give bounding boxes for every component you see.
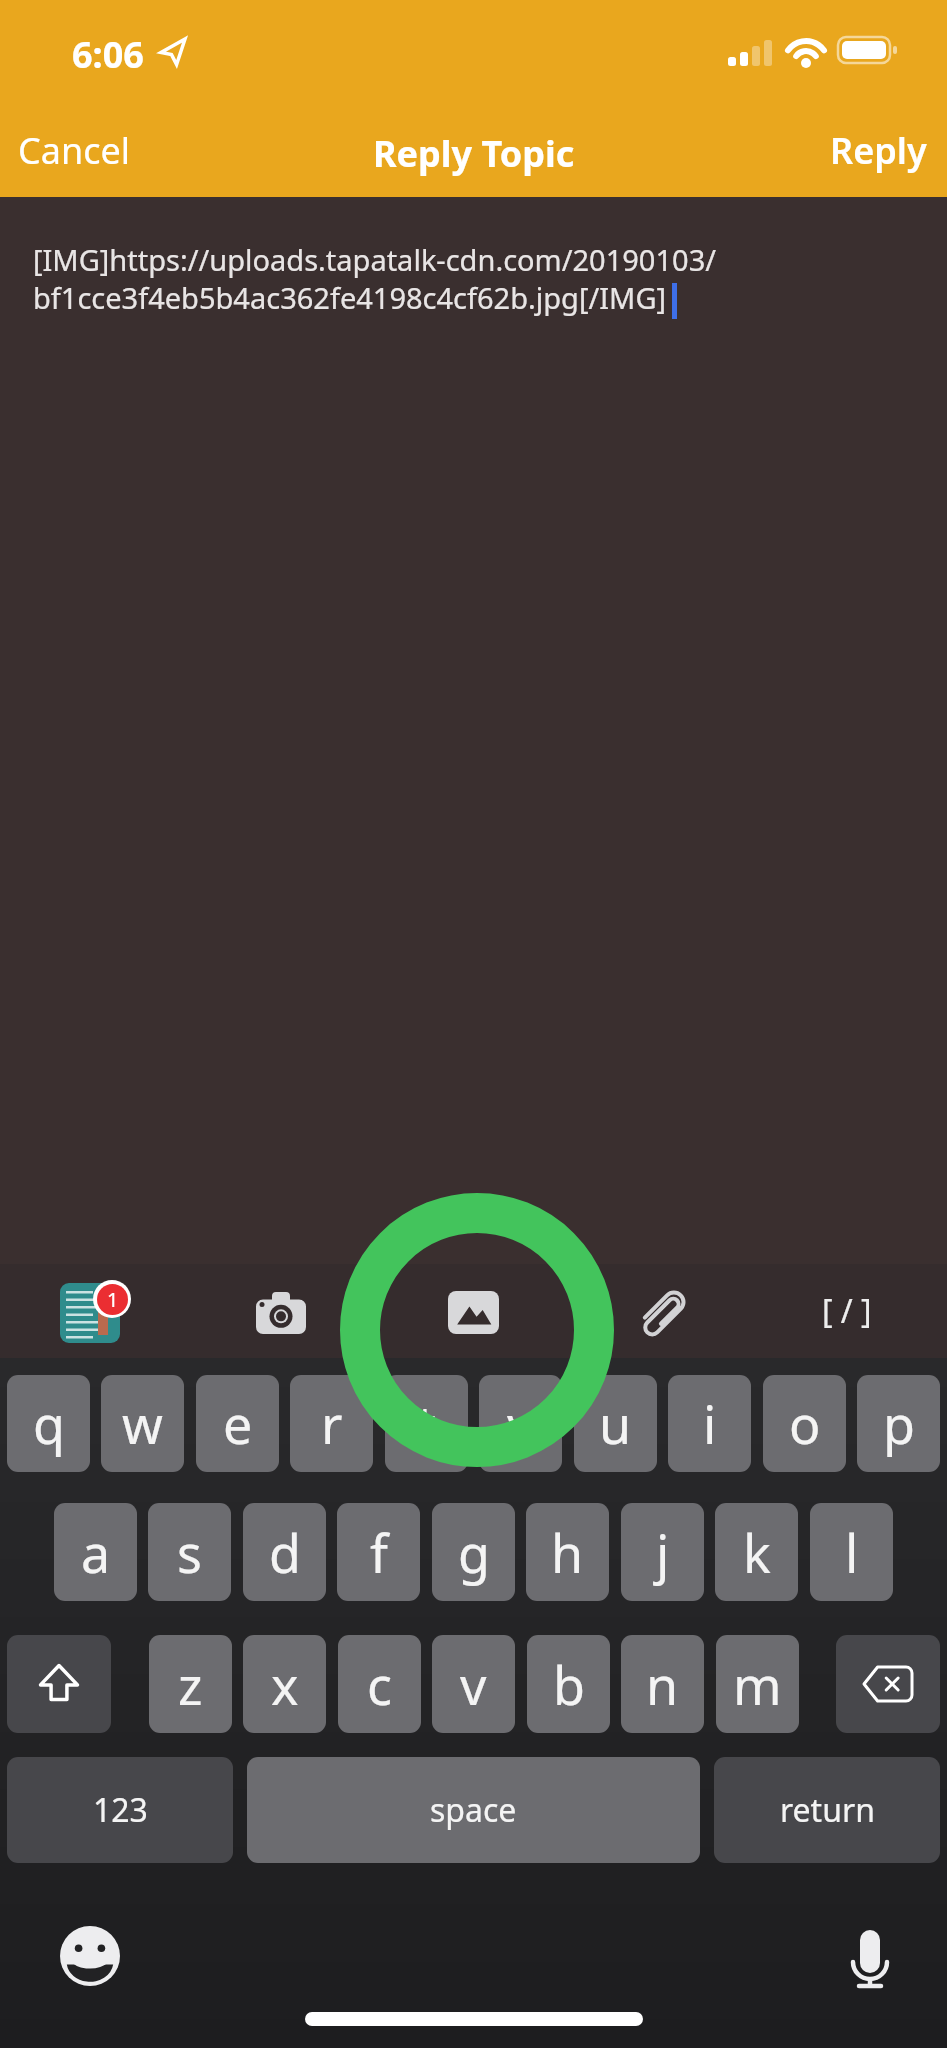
staticText: space — [430, 1788, 517, 1832]
button[interactable] — [7, 1635, 111, 1733]
button[interactable]: y — [479, 1375, 562, 1472]
button[interactable]: return — [714, 1757, 940, 1863]
button[interactable]: x — [243, 1635, 326, 1733]
staticText: [IMG]https://uploads.tapatalk-cdn.com/20… — [33, 240, 717, 317]
button[interactable]: o — [763, 1375, 846, 1472]
staticText: g — [458, 1517, 490, 1588]
button[interactable] — [642, 1289, 686, 1335]
staticText: u — [599, 1388, 632, 1459]
staticText: 123 — [93, 1788, 148, 1832]
button[interactable]: space — [247, 1757, 700, 1863]
button[interactable]: Cancel — [18, 126, 131, 175]
staticText: x — [271, 1649, 299, 1720]
button[interactable] — [60, 1283, 120, 1343]
button[interactable]: h — [526, 1503, 609, 1601]
staticText: i — [703, 1388, 717, 1459]
staticText: t — [417, 1388, 436, 1459]
button[interactable]: e — [196, 1375, 279, 1472]
button[interactable]: i — [668, 1375, 751, 1472]
staticText: o — [789, 1388, 821, 1459]
staticText: a — [81, 1517, 111, 1588]
button[interactable] — [851, 1928, 889, 1990]
staticText: z — [178, 1649, 203, 1720]
staticText: s — [177, 1517, 202, 1588]
button[interactable] — [448, 1291, 499, 1334]
button[interactable]: q — [7, 1375, 90, 1472]
button[interactable] — [836, 1635, 940, 1733]
button[interactable]: v — [432, 1635, 515, 1733]
staticText: r — [321, 1388, 343, 1459]
button[interactable]: t — [385, 1375, 468, 1472]
staticText: v — [460, 1649, 487, 1720]
button[interactable]: u — [574, 1375, 657, 1472]
button[interactable]: k — [715, 1503, 798, 1601]
staticText: l — [845, 1517, 859, 1588]
button[interactable]: b — [527, 1635, 610, 1733]
button[interactable] — [60, 1926, 120, 1986]
staticText: return — [780, 1788, 875, 1832]
button[interactable]: s — [148, 1503, 231, 1601]
staticText: c — [367, 1649, 392, 1720]
button[interactable]: w — [101, 1375, 184, 1472]
button[interactable]: f — [337, 1503, 420, 1601]
button[interactable]: 123 — [7, 1757, 233, 1863]
staticText: q — [33, 1388, 65, 1459]
staticText: j — [656, 1517, 670, 1588]
staticText: w — [122, 1388, 163, 1459]
staticText: n — [646, 1649, 679, 1720]
staticText: m — [733, 1649, 782, 1720]
button[interactable]: n — [621, 1635, 704, 1733]
button[interactable]: d — [243, 1503, 326, 1601]
staticText: b — [553, 1649, 585, 1720]
staticText: 6:06 — [72, 30, 144, 79]
button[interactable] — [256, 1292, 306, 1334]
staticText: d — [269, 1517, 301, 1588]
button[interactable]: p — [857, 1375, 940, 1472]
staticText: p — [883, 1388, 915, 1459]
button[interactable]: z — [149, 1635, 232, 1733]
staticText: f — [370, 1517, 388, 1588]
button[interactable]: c — [338, 1635, 421, 1733]
staticText: h — [551, 1517, 584, 1588]
button[interactable]: g — [432, 1503, 515, 1601]
staticText: 1 — [107, 1286, 119, 1313]
staticText: e — [223, 1388, 253, 1459]
button[interactable]: [ / ] — [822, 1289, 872, 1333]
button[interactable]: a — [54, 1503, 137, 1601]
staticText: Reply Topic — [373, 129, 575, 178]
button[interactable]: r — [290, 1375, 373, 1472]
button[interactable]: Reply — [830, 126, 927, 175]
staticText: k — [743, 1517, 771, 1588]
button[interactable]: j — [621, 1503, 704, 1601]
button[interactable]: m — [716, 1635, 799, 1733]
button[interactable]: l — [810, 1503, 893, 1601]
staticText: y — [507, 1388, 534, 1459]
